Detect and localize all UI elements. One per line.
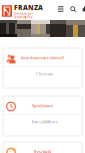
button[interactable]: Vuoi diventare cliente?: [3, 48, 82, 88]
staticText: Clicca qui: [36, 71, 53, 76]
staticText: Spedizione: [32, 103, 53, 108]
staticText: Resi facili: [34, 149, 51, 153]
staticText: Entro 24/48 ore: [31, 119, 57, 124]
button[interactable]: Spedizione: [3, 96, 82, 136]
staticText: Vuoi diventare cliente?: [20, 55, 64, 60]
button[interactable]: Resi facili: [3, 142, 82, 153]
staticText: forniture per: [14, 12, 33, 15]
button[interactable]: Menu: [58, 6, 63, 12]
staticText: la ristorazione: [14, 15, 33, 19]
button[interactable]: Cart: [82, 6, 85, 12]
staticText: FRANZA: [14, 3, 43, 12]
button[interactable]: Search: [70, 6, 76, 12]
button[interactable]: FRANZA: [2, 3, 43, 19]
